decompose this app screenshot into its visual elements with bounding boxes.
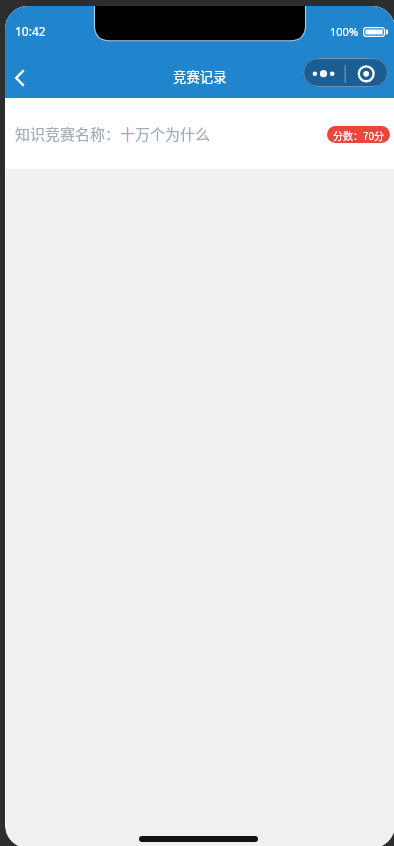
staticText: 分数：70分: [333, 128, 385, 142]
button[interactable]: Back: [5, 63, 35, 93]
button[interactable]: 知识竞赛名称：十万个为什么: [5, 98, 394, 169]
button[interactable]: 分数：70分: [327, 126, 390, 143]
staticText: 知识竞赛名称：十万个为什么: [15, 123, 211, 145]
button[interactable]: More options: [303, 58, 388, 87]
staticText: 竞赛记录: [173, 66, 227, 85]
staticText: 100%: [330, 24, 359, 39]
staticText: 10:42: [15, 23, 46, 39]
